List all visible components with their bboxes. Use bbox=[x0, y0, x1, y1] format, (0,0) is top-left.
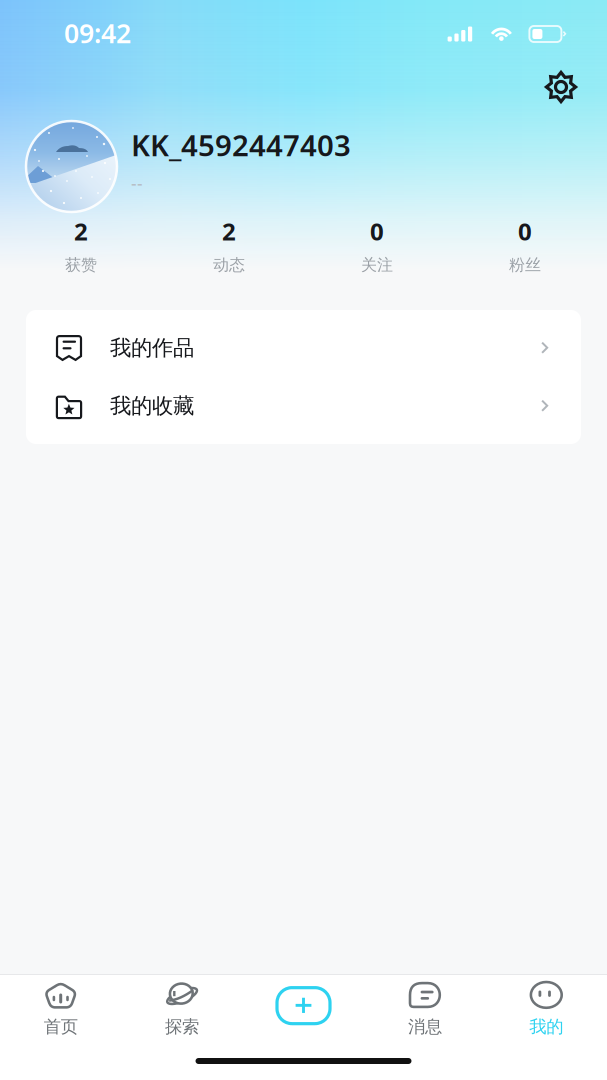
button[interactable]: 消息 bbox=[364, 974, 486, 1037]
staticText: 探索 bbox=[165, 1016, 199, 1037]
staticText: 2 bbox=[222, 215, 236, 247]
button[interactable]: 我的 bbox=[486, 974, 607, 1037]
staticText: 粉丝 bbox=[509, 255, 541, 275]
button[interactable]: 我的收藏 bbox=[26, 377, 581, 435]
staticText: 我的作品 bbox=[110, 335, 194, 361]
staticText: 动态 bbox=[213, 255, 245, 275]
staticText: 我的收藏 bbox=[110, 393, 194, 419]
staticText: 0 bbox=[518, 215, 532, 247]
button[interactable]: 探索 bbox=[121, 974, 243, 1037]
staticText: KK_4592447403 bbox=[131, 125, 351, 165]
staticText: 0 bbox=[370, 215, 384, 247]
button[interactable]: Create bbox=[243, 986, 364, 1026]
button[interactable]: 我的作品 bbox=[26, 319, 581, 377]
staticText: 首页 bbox=[44, 1016, 78, 1037]
staticText: 消息 bbox=[408, 1016, 442, 1037]
button[interactable]: Settings bbox=[534, 60, 588, 114]
staticText: 2 bbox=[74, 215, 88, 247]
staticText: 关注 bbox=[361, 255, 393, 275]
staticText: 我的 bbox=[529, 1016, 563, 1037]
button[interactable]: 首页 bbox=[0, 974, 121, 1037]
staticText: 09:42 bbox=[64, 15, 131, 51]
staticText: -- bbox=[131, 172, 143, 195]
staticText: 获赞 bbox=[65, 255, 97, 275]
